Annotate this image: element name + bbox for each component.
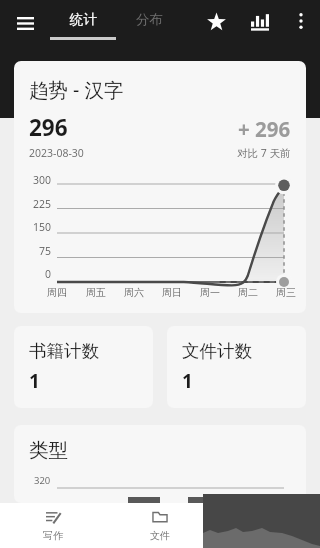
staticText: 文件计数: [182, 340, 252, 362]
button[interactable]: Navigation menu: [0, 0, 50, 46]
staticText: 320: [34, 474, 51, 487]
staticText: 周一: [200, 286, 220, 299]
staticText: 75: [39, 244, 52, 258]
staticText: 周五: [86, 286, 106, 299]
staticText: 150: [33, 220, 52, 234]
button[interactable]: 文件计数: [167, 326, 306, 408]
button[interactable]: 文件: [106, 503, 213, 548]
button[interactable]: More options: [282, 0, 320, 46]
button[interactable]: 统计: [50, 0, 116, 46]
staticText: 1: [182, 368, 193, 394]
staticText: 2023-08-30: [29, 146, 84, 160]
staticText: 296: [29, 112, 68, 143]
staticText: 周二: [238, 286, 258, 299]
button[interactable]: Favorite: [194, 0, 238, 46]
staticText: 写作: [43, 529, 63, 542]
button[interactable]: 书籍计数: [14, 326, 153, 408]
staticText: 统计: [70, 11, 97, 28]
button[interactable]: 写作: [0, 503, 106, 548]
staticText: 文件: [150, 529, 170, 542]
staticText: 书籍计数: [29, 340, 99, 362]
staticText: 周三: [276, 286, 296, 299]
staticText: 300: [33, 173, 52, 187]
staticText: 周四: [47, 286, 67, 299]
staticText: 0: [45, 267, 52, 281]
staticText: 225: [33, 197, 52, 211]
button[interactable]: 趋势 - 汉字: [14, 61, 306, 313]
staticText: 类型: [29, 438, 68, 463]
staticText: 周日: [162, 286, 182, 299]
staticText: 趋势 - 汉字: [29, 76, 124, 103]
button[interactable]: 分布: [116, 0, 182, 46]
staticText: 周六: [124, 286, 144, 299]
staticText: 对比 7 天前: [237, 146, 291, 160]
button[interactable]: Statistics chart: [238, 0, 282, 46]
staticText: 分布: [136, 11, 163, 28]
staticText: 1: [29, 368, 40, 394]
staticText: + 296: [238, 115, 291, 143]
button[interactable]: 类型: [14, 425, 306, 503]
